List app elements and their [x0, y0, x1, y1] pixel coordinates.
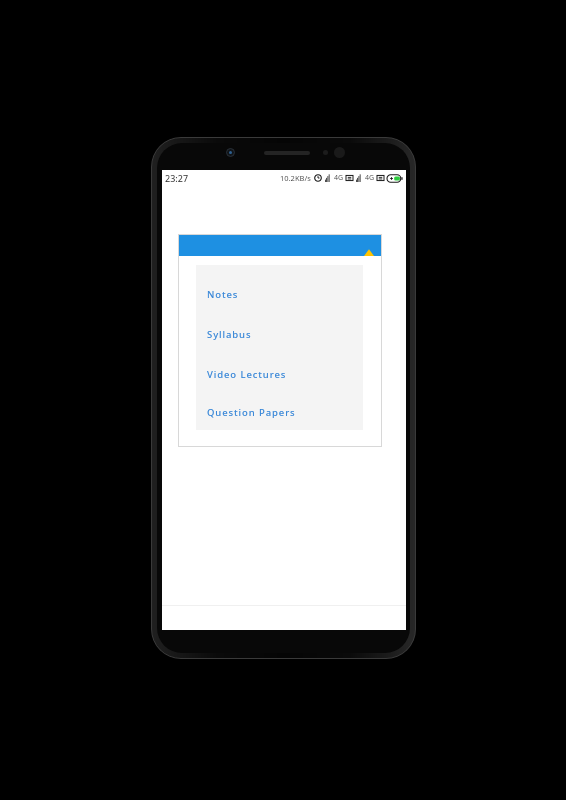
staticText: 4G: [365, 173, 375, 183]
button[interactable]: Question Papers: [196, 394, 363, 430]
staticText: 10.2KB/s: [280, 173, 311, 183]
button[interactable]: Syllabus: [196, 314, 363, 354]
staticText: Video Lectures: [207, 368, 287, 381]
button[interactable]: Warning: [178, 234, 382, 256]
button[interactable]: Notes: [196, 274, 363, 314]
button[interactable]: Video Lectures: [196, 354, 363, 394]
staticText: Syllabus: [207, 328, 252, 341]
other: Warning: [364, 248, 374, 256]
staticText: 4G: [334, 173, 344, 183]
staticText: Question Papers: [207, 406, 296, 419]
staticText: 23:27: [165, 172, 189, 184]
staticText: Notes: [207, 288, 239, 301]
